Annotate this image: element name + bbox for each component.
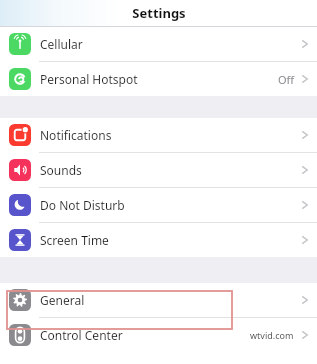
staticText: General bbox=[40, 292, 85, 308]
staticText: wtvid.com bbox=[250, 329, 294, 341]
other: Open Notifications bbox=[301, 129, 308, 141]
other: Open Control Center bbox=[301, 329, 308, 341]
staticText: Control Center bbox=[40, 327, 123, 343]
other: Open Screen Time bbox=[301, 234, 308, 246]
staticText: Cellular bbox=[40, 36, 83, 52]
other: Open Personal Hotspot bbox=[301, 73, 308, 85]
staticText: Do Not Disturb bbox=[40, 197, 125, 213]
button[interactable]: Do Not Disturb bbox=[0, 188, 317, 222]
button[interactable]: Notifications bbox=[0, 118, 317, 152]
other: Open Cellular bbox=[301, 38, 308, 50]
staticText: Sounds bbox=[40, 162, 82, 178]
staticText: Personal Hotspot bbox=[40, 71, 138, 87]
staticText: Settings bbox=[132, 4, 186, 22]
button[interactable]: Sounds bbox=[0, 153, 317, 187]
other: Open Sounds bbox=[301, 164, 308, 176]
staticText: Off bbox=[278, 72, 295, 87]
button[interactable]: Screen Time bbox=[0, 223, 317, 257]
staticText: Screen Time bbox=[40, 232, 109, 248]
button[interactable]: Cellular bbox=[0, 27, 317, 61]
staticText: Notifications bbox=[40, 127, 112, 143]
other: Open General bbox=[301, 294, 308, 306]
button[interactable]: Control Center bbox=[0, 318, 317, 352]
button[interactable]: Personal Hotspot bbox=[0, 62, 317, 96]
other: Open Do Not Disturb bbox=[301, 199, 308, 211]
button[interactable]: General bbox=[0, 283, 317, 317]
